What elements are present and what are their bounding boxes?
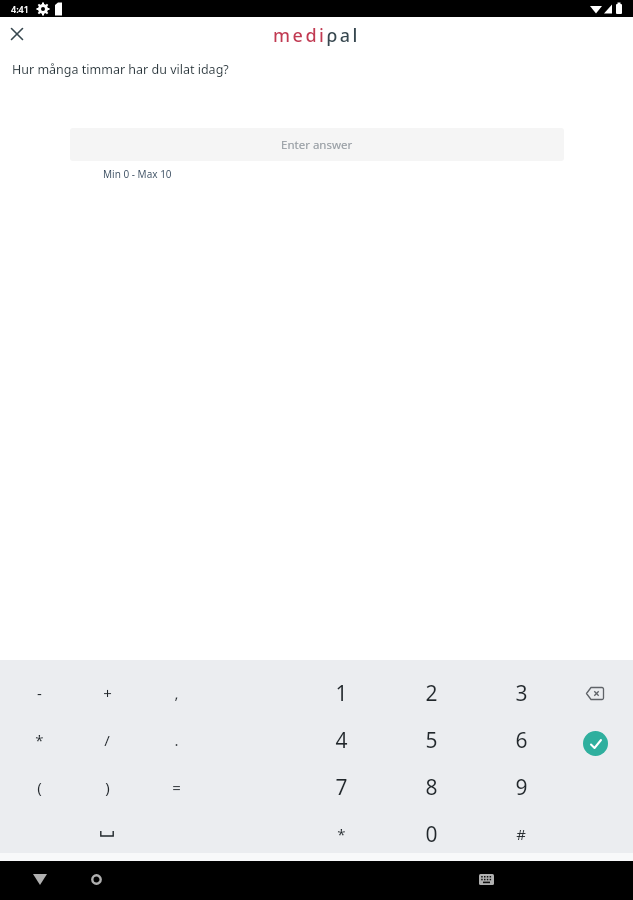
button[interactable]: 2	[409, 671, 453, 715]
staticText: Enter answer	[281, 137, 353, 153]
button[interactable]	[583, 731, 608, 756]
staticText: 3	[515, 679, 528, 708]
button[interactable]	[573, 671, 617, 715]
button[interactable]: 8	[409, 765, 453, 809]
staticText: 4:41	[11, 3, 29, 15]
button[interactable]: 6	[499, 718, 543, 762]
button[interactable]: -	[17, 671, 61, 715]
staticText: 9	[515, 773, 528, 802]
button[interactable]: 1	[319, 671, 363, 715]
staticText: Min 0 - Max 10	[103, 167, 172, 181]
staticText: *	[337, 824, 346, 844]
staticText: -	[37, 683, 42, 703]
button[interactable]: )	[85, 765, 129, 809]
button[interactable]	[85, 812, 129, 856]
button[interactable]: (	[17, 765, 61, 809]
staticText: ,	[174, 683, 179, 703]
staticText: #	[516, 824, 526, 844]
staticText: mediρal	[273, 23, 360, 48]
button[interactable]: #	[499, 812, 543, 856]
button[interactable]: +	[85, 671, 129, 715]
staticText: *	[35, 730, 44, 750]
button[interactable]: 7	[319, 765, 363, 809]
staticText: Hur många timmar har du vilat idag?	[12, 61, 229, 78]
button[interactable]: 3	[499, 671, 543, 715]
staticText: /	[104, 730, 110, 750]
staticText: 2	[425, 679, 438, 708]
button[interactable]: *	[17, 718, 61, 762]
staticText: +	[103, 683, 112, 703]
staticText: 7	[335, 773, 348, 802]
staticText: =	[172, 777, 181, 797]
button[interactable]: Enter answer	[70, 128, 564, 161]
staticText: 0	[425, 820, 438, 849]
button[interactable]: 4	[319, 718, 363, 762]
staticText: )	[105, 777, 110, 797]
button[interactable]: ,	[154, 671, 198, 715]
staticText: (	[37, 777, 42, 797]
button[interactable]: *	[319, 812, 363, 856]
staticText: 8	[425, 773, 438, 802]
button[interactable]	[80, 863, 112, 895]
button[interactable]: /	[85, 718, 129, 762]
staticText: 4	[335, 726, 348, 755]
staticText: 1	[335, 679, 348, 708]
button[interactable]	[5, 22, 29, 46]
button[interactable]: =	[154, 765, 198, 809]
button[interactable]: 9	[499, 765, 543, 809]
staticText: 6	[515, 726, 528, 755]
staticText: .	[174, 730, 179, 750]
button[interactable]: 5	[409, 718, 453, 762]
button[interactable]: 0	[409, 812, 453, 856]
staticText: 5	[425, 726, 438, 755]
button[interactable]	[470, 863, 502, 895]
button[interactable]	[24, 863, 56, 895]
button[interactable]: .	[154, 718, 198, 762]
